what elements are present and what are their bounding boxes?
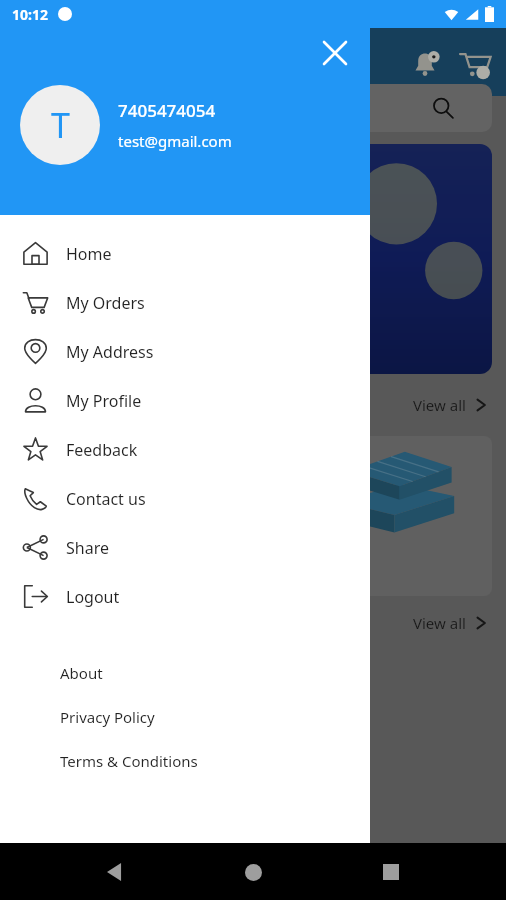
staticText: My Address xyxy=(66,341,154,363)
button[interactable]: My Orders xyxy=(0,278,370,327)
button[interactable]: Contact us xyxy=(0,474,370,523)
button[interactable]: View all xyxy=(413,613,488,633)
staticText: Terms & Conditions xyxy=(60,751,198,771)
button[interactable]: Recent apps xyxy=(369,850,413,894)
staticText: 7405474054 xyxy=(118,99,216,122)
button[interactable]: About xyxy=(0,651,370,695)
staticText: My Orders xyxy=(66,292,145,314)
button[interactable] xyxy=(14,84,492,132)
button[interactable]: Privacy Policy xyxy=(0,695,370,739)
button[interactable]: My Profile xyxy=(0,376,370,425)
button[interactable]: Feedback xyxy=(0,425,370,474)
button[interactable]: Share xyxy=(0,523,370,572)
staticText: T xyxy=(51,102,70,148)
button[interactable]: View all xyxy=(413,395,488,415)
staticText: 10:12 xyxy=(12,5,48,24)
button[interactable]: My Address xyxy=(0,327,370,376)
button[interactable]: Logout xyxy=(0,572,370,621)
staticText: test@gmail.com xyxy=(118,131,232,151)
button[interactable] xyxy=(14,144,492,374)
staticText: Logout xyxy=(66,586,120,608)
button[interactable]: Home xyxy=(0,229,370,278)
button[interactable]: Close xyxy=(312,30,358,76)
staticText: View all xyxy=(413,613,466,633)
button[interactable]: Notifications xyxy=(408,48,442,82)
button[interactable]: Home xyxy=(231,850,275,894)
button[interactable]: Terms & Conditions xyxy=(0,739,370,783)
staticText: Contact us xyxy=(66,488,146,510)
staticText: My Profile xyxy=(66,390,142,412)
staticText: About xyxy=(60,663,103,683)
staticText: Home xyxy=(66,243,112,265)
button[interactable]: Back xyxy=(94,850,138,894)
staticText: Share xyxy=(66,537,109,559)
staticText: Privacy Policy xyxy=(60,707,155,727)
button[interactable]: e (1) xyxy=(302,436,492,596)
staticText: View all xyxy=(413,395,466,415)
staticText: Feedback xyxy=(66,439,138,461)
button[interactable]: Cart xyxy=(458,48,492,82)
